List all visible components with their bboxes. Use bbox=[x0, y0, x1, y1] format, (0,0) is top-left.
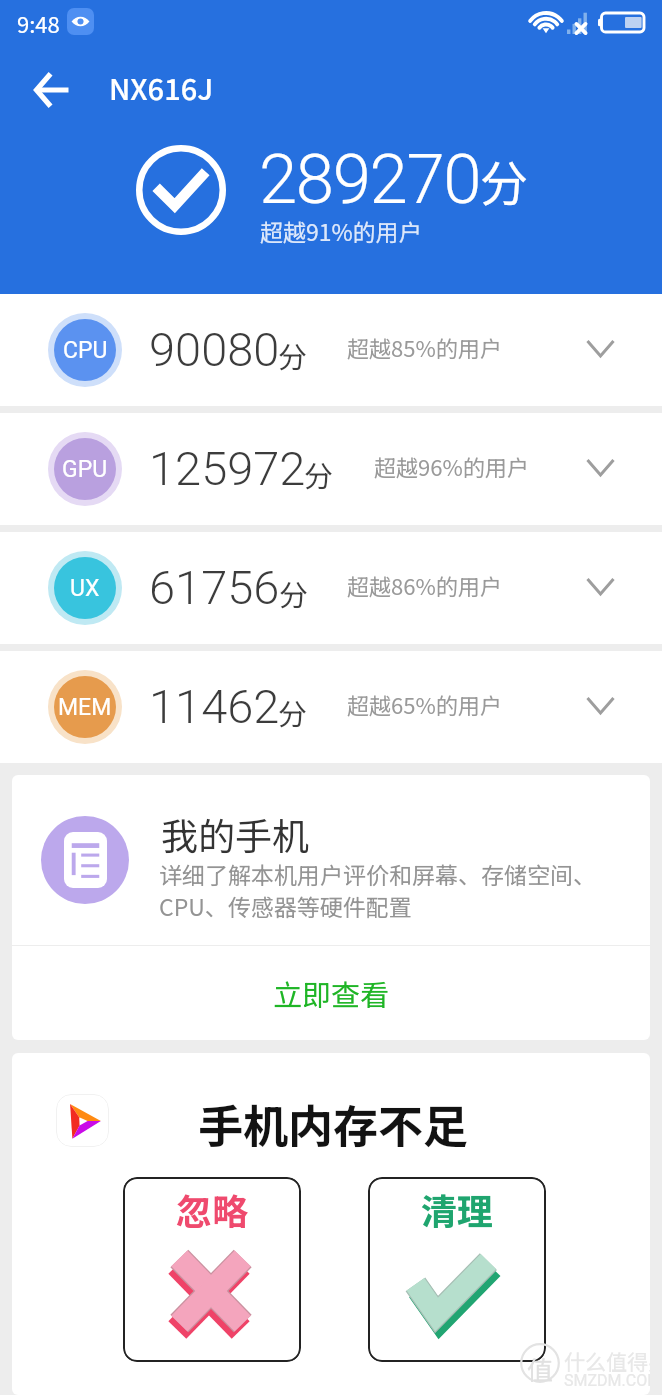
button[interactable]: 忽略 bbox=[123, 1177, 301, 1362]
button[interactable]: GPU bbox=[0, 413, 662, 525]
staticText: 61756 bbox=[149, 560, 280, 615]
staticText: 什么值得买 bbox=[564, 1346, 650, 1376]
staticText: 超越65%的用户 bbox=[347, 688, 502, 720]
button[interactable]: CPU bbox=[0, 294, 662, 406]
button[interactable]: MEM bbox=[0, 651, 662, 763]
staticText: CPU bbox=[63, 337, 108, 364]
staticText: 分 bbox=[279, 572, 309, 614]
staticText: 分 bbox=[278, 691, 308, 733]
button[interactable]: 立即查看 bbox=[12, 946, 650, 1040]
staticText: 超越85%的用户 bbox=[347, 331, 502, 363]
staticText: 289270 bbox=[259, 139, 481, 220]
staticText: NX616J bbox=[109, 66, 214, 108]
staticText: 超越96%的用户 bbox=[374, 450, 529, 482]
button[interactable]: UX bbox=[0, 532, 662, 644]
staticText: 忽略 bbox=[176, 1183, 249, 1235]
staticText: 分 bbox=[278, 334, 308, 376]
staticText: 清理 bbox=[421, 1183, 494, 1235]
staticText: MEM bbox=[58, 694, 112, 721]
staticText: GPU bbox=[62, 456, 108, 483]
staticText: UX bbox=[70, 575, 100, 602]
staticText: 值 bbox=[527, 1350, 554, 1388]
button[interactable]: Back bbox=[27, 65, 77, 115]
staticText: 我的手机 bbox=[161, 807, 309, 861]
staticText: 详细了解本机用户评价和屏幕、存储空间、 CPU、传感器等硬件配置 bbox=[159, 857, 596, 922]
staticText: 90080 bbox=[149, 322, 280, 377]
staticText: 9:48 bbox=[17, 7, 60, 39]
staticText: 手机内存不足 bbox=[198, 1091, 469, 1156]
staticText: 超越91%的用户 bbox=[260, 214, 422, 247]
button[interactable]: 清理 bbox=[368, 1177, 546, 1362]
staticText: 分 bbox=[480, 145, 529, 215]
staticText: 125972 bbox=[149, 441, 306, 496]
staticText: 立即查看 bbox=[273, 972, 390, 1014]
staticText: SMZDM.COM bbox=[564, 1371, 650, 1390]
staticText: 分 bbox=[304, 453, 334, 495]
staticText: 11462 bbox=[149, 679, 280, 734]
staticText: 超越86%的用户 bbox=[347, 569, 502, 601]
